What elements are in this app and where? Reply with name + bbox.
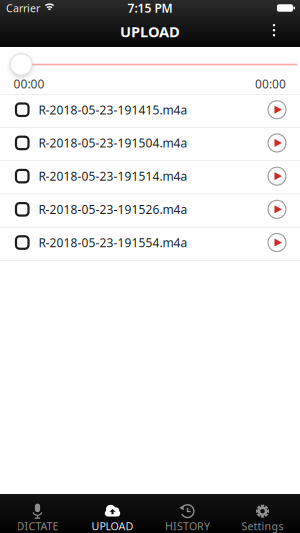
staticText: R-2018-05-23-191554.m4a [38, 235, 187, 250]
staticText: 7:15 PM [127, 0, 172, 16]
button[interactable]: Play R-2018-05-23-191514.m4a [268, 167, 300, 185]
staticText: UPLOAD [120, 22, 180, 41]
button[interactable]: Select R-2018-05-23-191514.m4a [0, 170, 38, 182]
button[interactable]: Dictate [0, 494, 75, 533]
button[interactable]: Play R-2018-05-23-191415.m4a [268, 101, 300, 119]
staticText: R-2018-05-23-191514.m4a [38, 168, 187, 184]
staticText: Settings [241, 519, 283, 533]
button[interactable]: Select R-2018-05-23-191526.m4a [0, 203, 38, 216]
button[interactable]: Play R-2018-05-23-191526.m4a [268, 200, 300, 218]
staticText: 00:00 [255, 76, 286, 92]
staticText: R-2018-05-23-191415.m4a [38, 102, 187, 118]
button[interactable]: More options [259, 16, 289, 47]
staticText: UPLOAD [91, 519, 133, 533]
staticText: HISTORY [165, 519, 210, 533]
button[interactable]: History [150, 494, 225, 533]
button[interactable]: Select R-2018-05-23-191554.m4a [0, 236, 38, 249]
button[interactable]: Upload [75, 494, 150, 533]
button[interactable]: Play R-2018-05-23-191504.m4a [268, 134, 300, 152]
staticText: Carrier [6, 1, 40, 15]
staticText: DICTATE [16, 519, 58, 533]
staticText: R-2018-05-23-191504.m4a [38, 135, 187, 151]
button[interactable]: Select R-2018-05-23-191504.m4a [0, 137, 38, 149]
button[interactable]: Play R-2018-05-23-191554.m4a [268, 233, 300, 251]
staticText: R-2018-05-23-191526.m4a [38, 201, 187, 217]
button[interactable]: Select R-2018-05-23-191415.m4a [0, 103, 38, 116]
staticText: 00:00 [13, 76, 44, 92]
button[interactable]: Settings [225, 494, 300, 533]
